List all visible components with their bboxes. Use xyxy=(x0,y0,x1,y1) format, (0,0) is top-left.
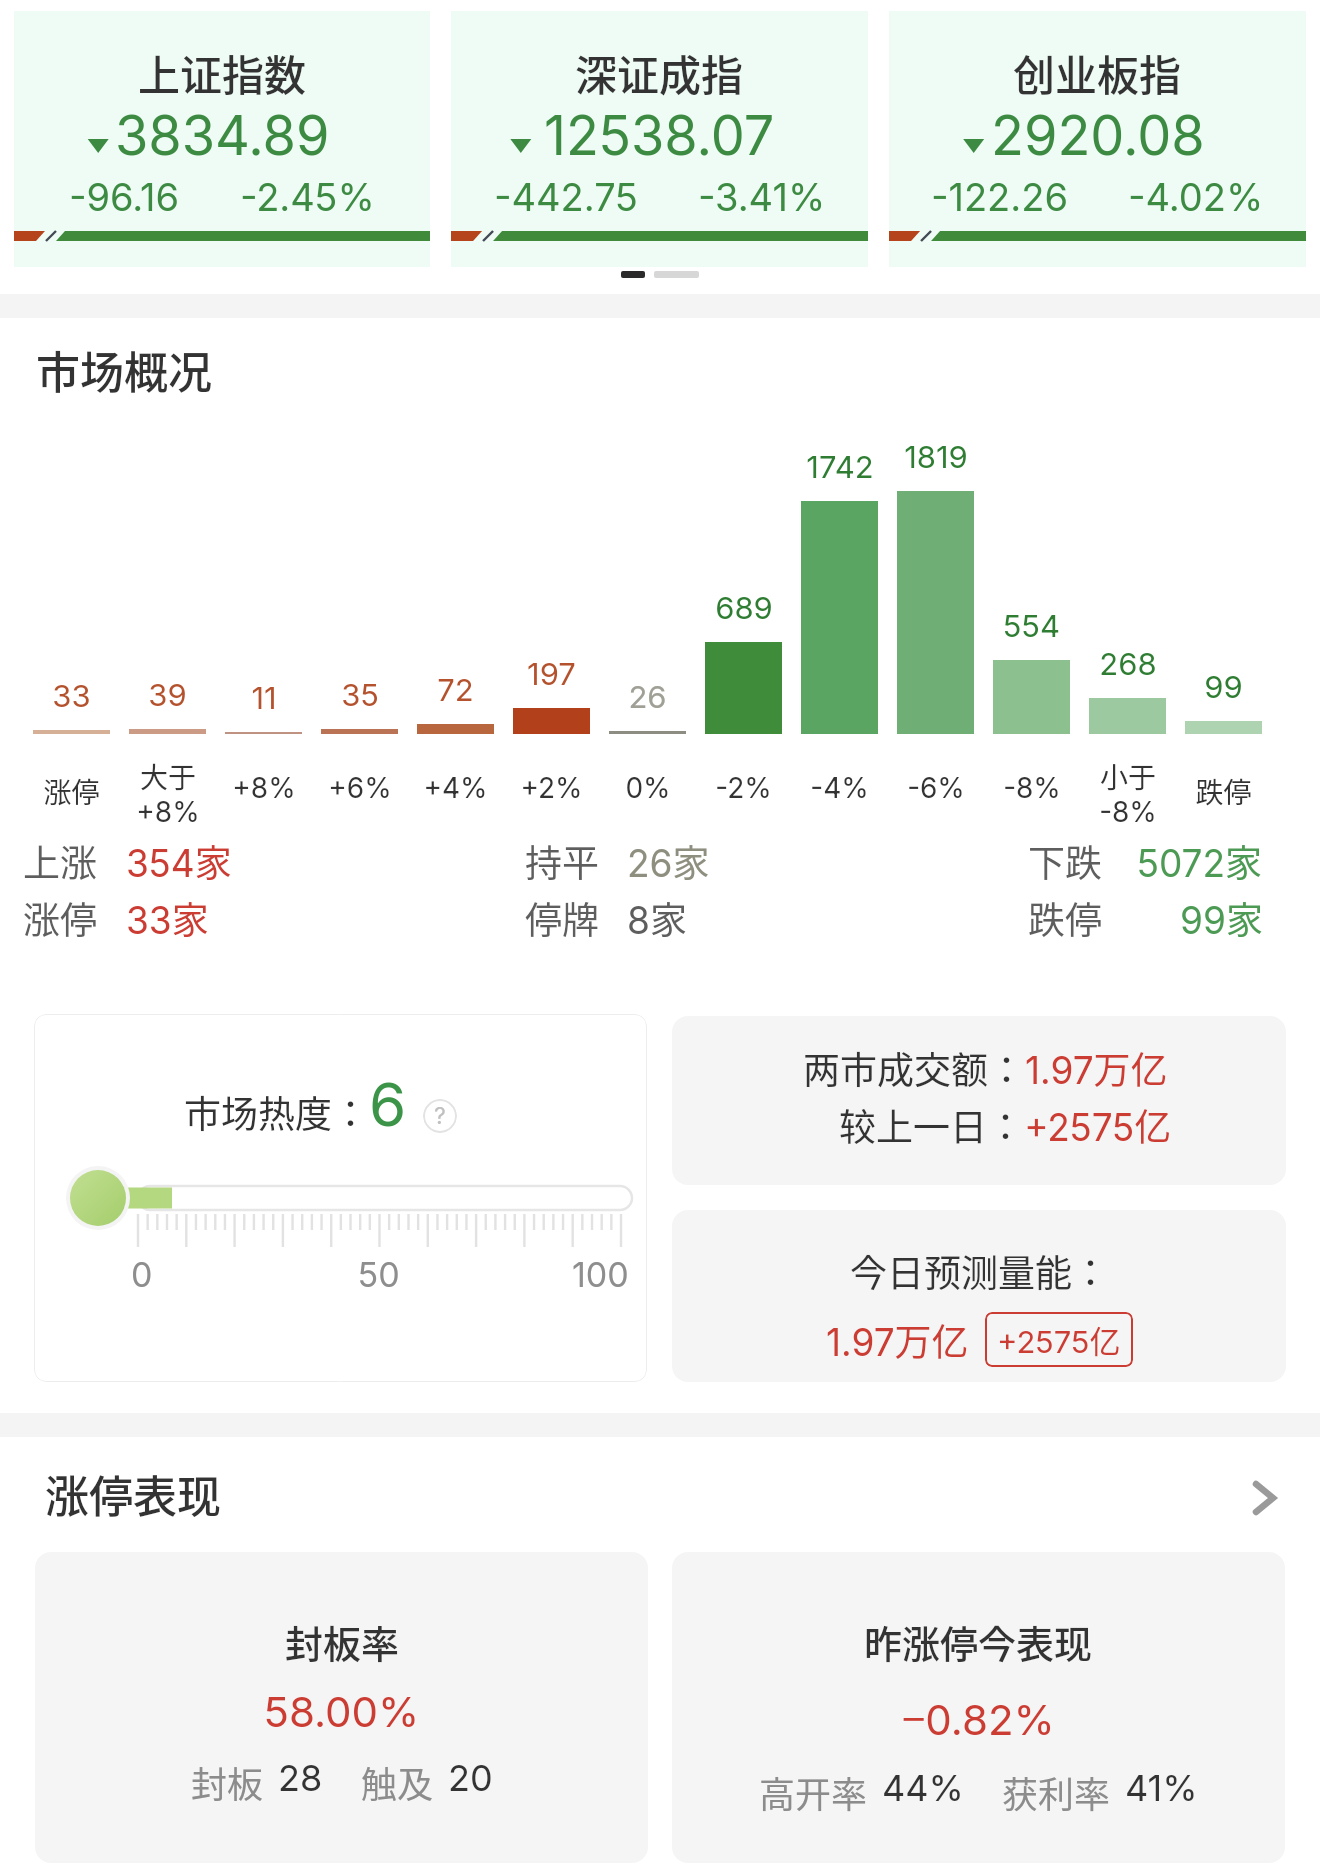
staticText: 市场概况 xyxy=(36,338,212,402)
staticText: 涨停 xyxy=(23,891,97,945)
button[interactable]: 上证指数 xyxy=(14,11,430,267)
staticText: +4% xyxy=(423,771,488,805)
staticText: 268 xyxy=(1099,645,1157,683)
button[interactable]: 封板率 xyxy=(35,1552,648,1863)
staticText: 33 xyxy=(52,677,91,715)
staticText: -96.16 xyxy=(69,174,180,220)
staticText: 6 xyxy=(369,1068,407,1141)
staticText: 5072家 xyxy=(1137,834,1263,888)
staticText: +2% xyxy=(520,771,583,805)
staticText: 11 xyxy=(251,679,277,717)
staticText: 354家 xyxy=(126,834,232,888)
staticText: 高开率 xyxy=(759,1766,868,1818)
staticText: 昨涨停今表现 xyxy=(864,1614,1093,1669)
staticText: 58.00% xyxy=(264,1686,420,1737)
staticText: 市场热度： xyxy=(184,1085,369,1139)
staticText: -6% xyxy=(907,771,965,805)
staticText: 持平 xyxy=(525,834,599,888)
staticText: 554 xyxy=(1003,607,1060,645)
staticText: 封板率 xyxy=(285,1614,400,1669)
staticText: 50 xyxy=(358,1254,400,1295)
staticText: 26家 xyxy=(627,834,710,888)
staticText: 涨停 xyxy=(43,771,100,812)
staticText: -8% xyxy=(1003,771,1061,805)
button[interactable]: 创业板指 xyxy=(889,11,1306,267)
staticText: 1819 xyxy=(904,438,968,476)
staticText: 小于 -8% xyxy=(1099,756,1157,829)
staticText: 今日预测量能： xyxy=(850,1244,1109,1298)
staticText: 41% xyxy=(1125,1766,1198,1810)
button[interactable]: 市场热度： xyxy=(34,1014,647,1382)
staticText: 上证指数 xyxy=(138,42,307,103)
staticText: -122.26 xyxy=(931,174,1068,220)
staticText: 2920.08 xyxy=(991,103,1205,168)
staticText: 28 xyxy=(278,1756,323,1800)
staticText: 下跌 xyxy=(1028,834,1102,888)
staticText: -4% xyxy=(810,771,869,805)
staticText: 44% xyxy=(882,1766,964,1810)
staticText: 1742 xyxy=(806,448,874,486)
staticText: 35 xyxy=(341,676,379,714)
staticText: 大于 +8% xyxy=(136,756,200,829)
staticText: +6% xyxy=(328,771,392,805)
staticText: 获利率 xyxy=(1002,1766,1111,1818)
staticText: -2% xyxy=(715,771,772,805)
staticText: 触及 xyxy=(361,1756,434,1808)
staticText: -2.45% xyxy=(240,174,375,220)
staticText: -4.02% xyxy=(1128,174,1264,220)
staticText: +8% xyxy=(232,771,296,805)
staticText: 197 xyxy=(527,655,576,693)
staticText: 0 xyxy=(131,1254,153,1295)
staticText: +2575亿 xyxy=(997,1317,1121,1362)
staticText: 26 xyxy=(628,678,667,716)
staticText: 689 xyxy=(715,589,773,627)
staticText: 较上一日： xyxy=(839,1098,1024,1152)
staticText: ? xyxy=(434,1102,446,1130)
staticText: 涨停表现 xyxy=(45,1462,221,1526)
staticText: 0% xyxy=(625,771,671,805)
staticText: 封板 xyxy=(191,1756,264,1808)
staticText: 跌停 xyxy=(1028,891,1102,945)
staticText: 创业板指 xyxy=(1013,42,1182,103)
staticText: 33家 xyxy=(126,891,209,945)
staticText: 12538.07 xyxy=(544,103,775,168)
staticText: 1.97万亿 xyxy=(1025,1041,1168,1095)
staticText: 1.97万亿 xyxy=(826,1313,969,1367)
button[interactable]: 今日预测量能： xyxy=(672,1210,1286,1382)
staticText: 3834.89 xyxy=(115,103,330,168)
staticText: 两市成交额： xyxy=(803,1041,1025,1095)
staticText: 深证成指 xyxy=(575,42,744,103)
staticText: 跌停 xyxy=(1195,771,1252,812)
staticText: +2575亿 xyxy=(1024,1098,1172,1152)
staticText: −0.82% xyxy=(902,1686,1055,1747)
staticText: 99家 xyxy=(1180,891,1263,945)
staticText: 停牌 xyxy=(525,891,599,945)
staticText: 上涨 xyxy=(23,834,97,888)
staticText: 72 xyxy=(437,671,474,709)
button[interactable]: 昨涨停今表现 xyxy=(672,1552,1285,1863)
staticText: -3.41% xyxy=(698,174,826,220)
staticText: 39 xyxy=(148,676,187,714)
staticText: 100 xyxy=(572,1254,629,1295)
other: More xyxy=(1253,1477,1275,1519)
staticText: 20 xyxy=(448,1756,493,1800)
staticText: 99 xyxy=(1204,668,1243,706)
button[interactable]: 两市成交额： xyxy=(672,1016,1286,1185)
staticText: 8家 xyxy=(627,891,687,945)
button[interactable]: 深证成指 xyxy=(451,11,868,267)
button[interactable]: 涨停表现 xyxy=(45,1462,1275,1526)
staticText: -442.75 xyxy=(494,174,638,220)
